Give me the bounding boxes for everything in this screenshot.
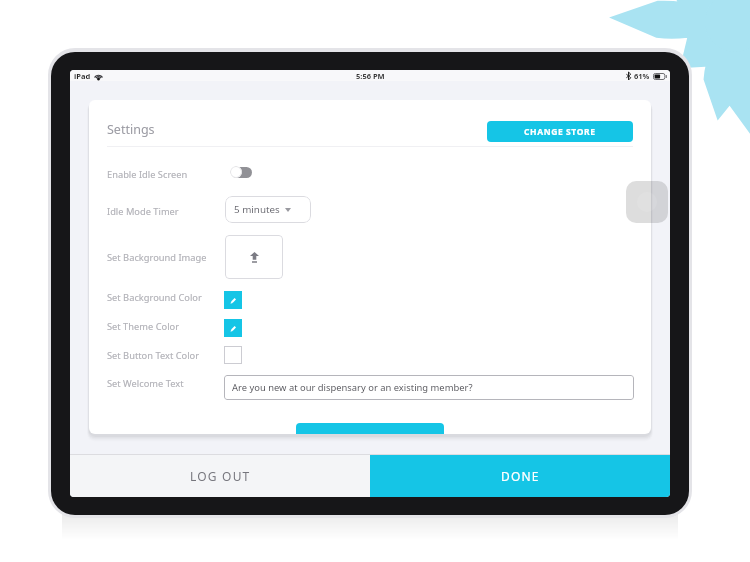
button[interactable]: DONE <box>370 455 670 497</box>
button[interactable]: Upload background image <box>225 235 283 279</box>
staticText: Set Button Text Color <box>107 349 200 362</box>
staticText: Are you new at our dispensary or an exis… <box>232 381 473 394</box>
button[interactable]: Are you new at our dispensary or an exis… <box>224 375 634 400</box>
button[interactable]: Set Background Color <box>224 291 242 309</box>
staticText: iPad <box>74 71 91 81</box>
staticText: Enable Idle Screen <box>107 168 188 181</box>
button[interactable]: Enable Idle Screen toggle <box>230 166 252 178</box>
button[interactable]: Set Theme Color <box>224 319 242 337</box>
button[interactable]: LOG OUT <box>70 455 370 497</box>
staticText: Set Welcome Text <box>107 377 184 390</box>
staticText: DONE <box>501 468 540 484</box>
staticText: Set Theme Color <box>107 320 179 333</box>
staticText: CHANGE STORE <box>524 126 596 138</box>
staticText: 5:56 PM <box>356 71 385 81</box>
staticText: 61% <box>634 71 650 81</box>
staticText: Set Background Color <box>107 291 202 304</box>
staticText: 5 minutes <box>234 203 280 216</box>
button[interactable]: Save <box>296 423 444 434</box>
staticText: Settings <box>107 121 155 138</box>
staticText: LOG OUT <box>190 468 251 484</box>
button[interactable]: 5 minutes <box>225 196 311 223</box>
staticText: Idle Mode Timer <box>107 205 179 218</box>
button[interactable]: CHANGE STORE <box>487 121 633 142</box>
button[interactable]: Set Button Text Color <box>224 346 242 364</box>
staticText: Set Background Image <box>107 251 207 264</box>
